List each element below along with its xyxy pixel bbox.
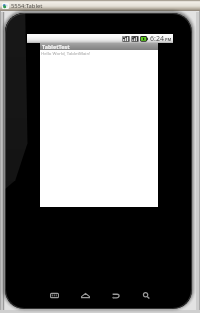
button[interactable]: Recent apps xyxy=(48,289,61,302)
button[interactable]: Back xyxy=(109,289,122,302)
button[interactable]: Home xyxy=(79,289,92,302)
staticText: Hello World, TabletMain! xyxy=(41,50,91,56)
staticText: 6:24 xyxy=(150,34,164,43)
button[interactable]: Search xyxy=(140,289,153,302)
staticText: 5554:Tablet xyxy=(11,2,43,10)
staticText: TabletTest xyxy=(42,43,70,50)
staticText: PM xyxy=(165,37,172,42)
